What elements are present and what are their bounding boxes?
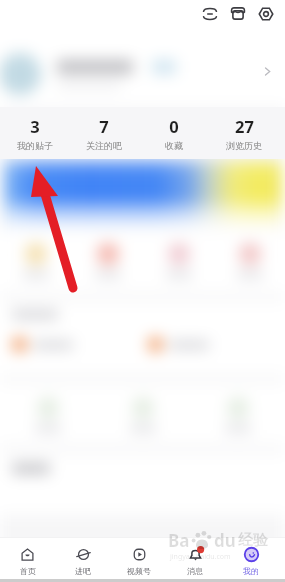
staticText: 3 [30, 115, 40, 137]
staticText: 进吧 [75, 566, 91, 576]
staticText: 经验 [238, 531, 268, 550]
staticText: 消息 [187, 566, 203, 576]
button[interactable]: Shop [230, 6, 246, 22]
staticText: 关注的吧 [86, 140, 122, 151]
button[interactable]: 首页 [0, 538, 55, 577]
button[interactable]: Settings [258, 6, 274, 22]
staticText: 首页 [20, 566, 36, 576]
staticText: 27 [235, 115, 254, 137]
button[interactable]: More [262, 66, 273, 77]
button[interactable]: 我的 [223, 538, 279, 577]
staticText: 7 [99, 115, 109, 137]
button[interactable]: 进吧 [55, 538, 111, 577]
button[interactable]: 消息 [167, 538, 223, 577]
staticText: Ba [168, 529, 190, 552]
button[interactable]: 3 [0, 107, 69, 159]
staticText: 收藏 [165, 140, 183, 151]
staticText: 0 [169, 115, 179, 137]
staticText: 我的贴子 [17, 140, 53, 151]
staticText: jingyan.baidu.com [170, 552, 231, 562]
staticText: 浏览历史 [226, 140, 262, 151]
staticText: du [214, 529, 236, 552]
button[interactable]: 27 [209, 107, 279, 159]
staticText: 我的 [243, 566, 259, 576]
staticText: 视频号 [127, 566, 151, 576]
button[interactable]: 7 [69, 107, 139, 159]
button[interactable]: 0 [139, 107, 209, 159]
button[interactable]: Scan [202, 6, 218, 22]
button[interactable]: 视频号 [111, 538, 167, 577]
